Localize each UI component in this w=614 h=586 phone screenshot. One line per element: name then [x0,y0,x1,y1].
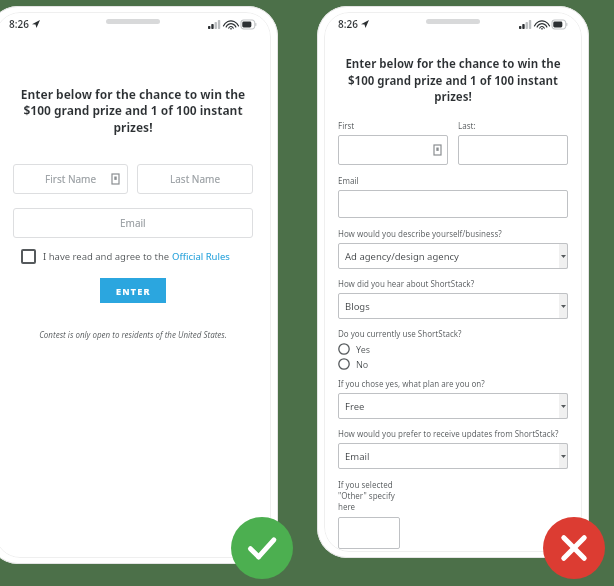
button[interactable] [338,135,448,165]
button[interactable]: Free [338,393,568,419]
staticText: Enter below for the chance to win the $1… [344,56,562,104]
button[interactable]: Yes [338,343,371,355]
staticText: 8:26 [9,17,29,31]
button[interactable]: Email [13,208,253,238]
button[interactable] [338,190,568,218]
button[interactable]: Success [231,517,293,579]
button[interactable]: Error [543,517,605,579]
staticText: Email [120,216,146,230]
staticText: I have read and agree to the [43,250,172,263]
button[interactable]: First Name [13,164,128,194]
staticText: First [338,120,355,131]
staticText: 8:26 [338,17,358,31]
staticText: Yes [356,343,371,355]
staticText: ENTER [116,285,151,297]
button[interactable]: Ad agency/design agency [338,243,568,269]
staticText: Free [345,400,365,413]
button[interactable]: ENTER [100,278,166,303]
button[interactable] [458,135,568,165]
staticText: First Name [45,172,97,186]
staticText: Email [345,450,370,463]
button[interactable] [338,517,400,549]
staticText: Do you currently use ShortStack? [338,328,462,339]
staticText: No [356,358,369,370]
button[interactable]: No [338,358,369,370]
staticText: Ad agency/design agency [345,250,459,263]
staticText: If you selected "Other" specify here [338,479,395,512]
staticText: Enter below for the chance to win the $1… [13,86,253,136]
staticText: Last: [458,120,476,131]
staticText: How would you prefer to receive updates … [338,428,559,439]
button[interactable]: Blogs [338,293,568,319]
button[interactable]: Email [338,443,568,469]
staticText: Email [338,175,359,186]
staticText: Contest is only open to residents of the… [13,329,253,340]
staticText: How did you hear about ShortStack? [338,278,475,289]
button[interactable]: I have read and agree to the [13,249,253,264]
button[interactable]: Last Name [137,164,253,194]
staticText: If you chose yes, what plan are you on? [338,378,485,389]
staticText: Last Name [170,172,221,186]
staticText: Official Rules [172,250,230,263]
staticText: Blogs [345,300,370,313]
staticText: How would you describe yourself/business… [338,228,502,239]
